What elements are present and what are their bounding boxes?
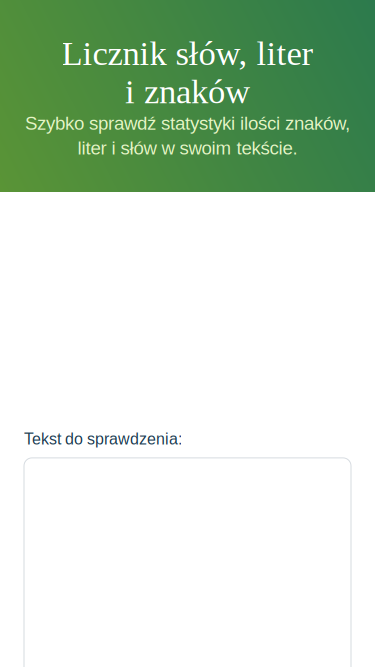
staticText: i znaków	[125, 72, 250, 111]
staticText: Tekst do sprawdzenia:	[24, 430, 182, 448]
staticText: Szybko sprawdź statystyki ilości znaków,	[25, 113, 350, 134]
staticText: Licznik słów, liter	[61, 34, 313, 72]
staticText: liter i słów w swoim tekście.	[77, 138, 297, 158]
